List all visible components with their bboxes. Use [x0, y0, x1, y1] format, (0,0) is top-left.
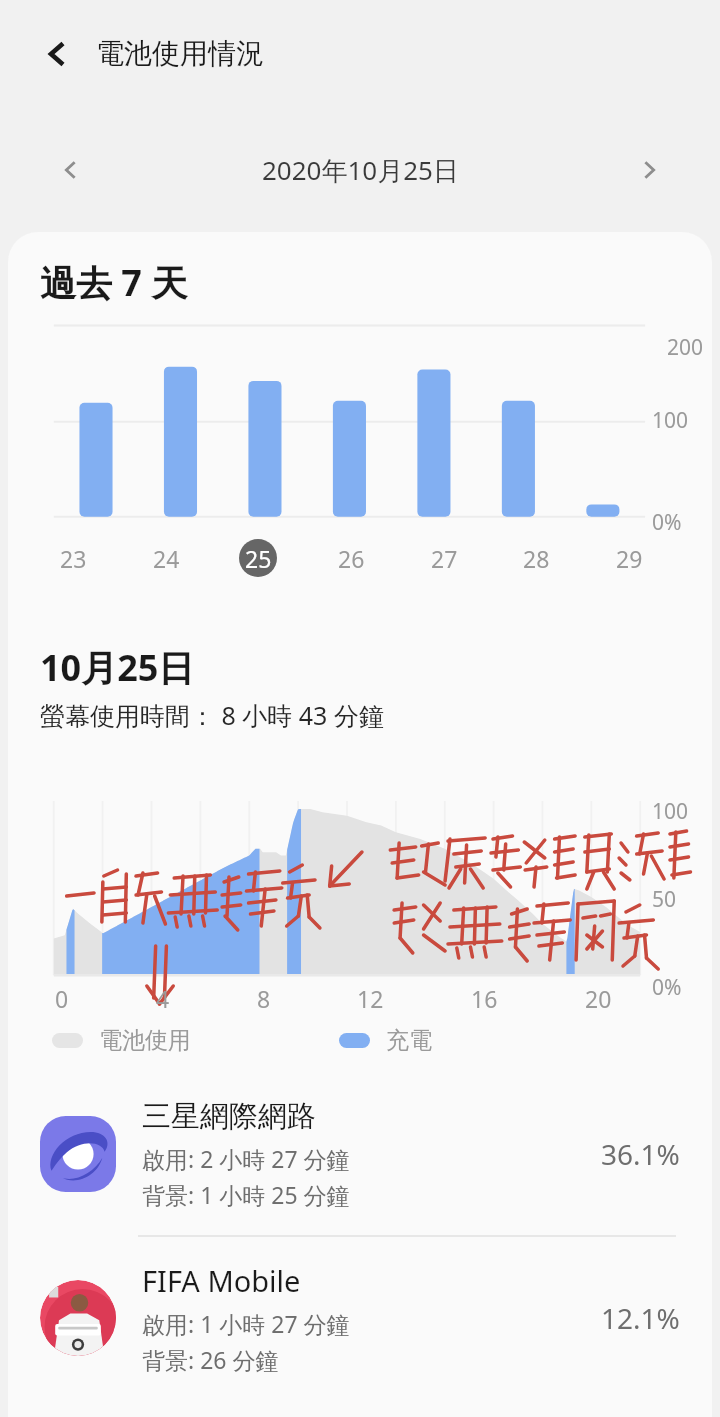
staticText: 螢幕使用時間： 8 小時 43 分鐘 [40, 698, 384, 732]
button[interactable]: Next day [620, 141, 678, 199]
staticText: 100 [652, 406, 689, 435]
staticText: 背景: 1 小時 25 分鐘 [142, 1179, 350, 1210]
staticText: 啟用: 1 小時 27 分鐘 [142, 1308, 350, 1339]
staticText: 10月25日 [40, 643, 195, 692]
button[interactable]: 27 [425, 539, 463, 577]
staticText: 8 [257, 983, 271, 1014]
staticText: 4 [156, 983, 170, 1014]
staticText: 0 [55, 983, 69, 1014]
button[interactable]: Back [30, 27, 84, 81]
staticText: 50 [652, 885, 677, 914]
staticText: 啟用: 2 小時 27 分鐘 [142, 1143, 350, 1174]
staticText: 0% [652, 973, 682, 1002]
staticText: 24 [153, 543, 180, 574]
staticText: 16 [471, 983, 498, 1014]
staticText: 20 [585, 983, 612, 1014]
button[interactable]: 24 [147, 539, 185, 577]
staticText: 2020年10月25日 [262, 152, 459, 188]
staticText: 電池使用 [99, 1026, 191, 1055]
staticText: 12.1% [601, 1299, 680, 1337]
staticText: 過去 7 天 [40, 258, 188, 307]
staticText: 12 [357, 983, 384, 1014]
staticText: 背景: 26 分鐘 [142, 1344, 279, 1375]
button[interactable]: Previous day [42, 141, 100, 199]
button[interactable]: 28 [517, 539, 555, 577]
staticText: 26 [338, 543, 365, 574]
staticText: 23 [60, 543, 87, 574]
button[interactable]: FIFA Mobile [8, 1237, 712, 1399]
staticText: 27 [431, 543, 458, 574]
staticText: 充電 [386, 1026, 432, 1055]
button[interactable]: 26 [332, 539, 370, 577]
button[interactable]: 23 [54, 539, 92, 577]
staticText: 200 [667, 333, 704, 362]
staticText: FIFA Mobile [142, 1261, 301, 1300]
staticText: 28 [523, 543, 550, 574]
button[interactable]: 29 [610, 539, 648, 577]
staticText: 電池使用情況 [96, 36, 264, 71]
staticText: 36.1% [601, 1135, 680, 1173]
button[interactable]: 三星網際網路 [8, 1073, 712, 1235]
staticText: 100 [652, 797, 689, 826]
button[interactable]: 25 [239, 539, 277, 577]
staticText: 25 [245, 543, 272, 574]
staticText: 三星網際網路 [142, 1098, 316, 1135]
staticText: 0% [652, 508, 682, 537]
staticText: 29 [616, 543, 643, 574]
